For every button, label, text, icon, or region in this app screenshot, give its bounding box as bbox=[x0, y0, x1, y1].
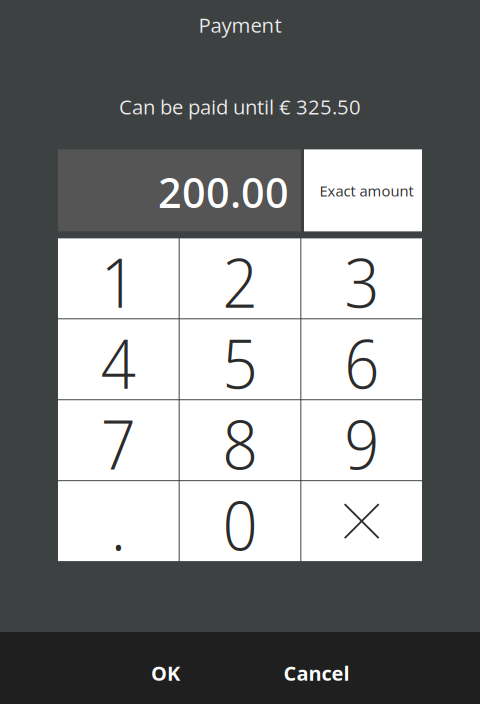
staticText: 0 bbox=[222, 478, 257, 570]
button[interactable]: 0 bbox=[180, 481, 300, 561]
staticText: Payment bbox=[198, 11, 281, 39]
button[interactable]: 9 bbox=[301, 400, 422, 480]
button[interactable]: 7 bbox=[58, 400, 179, 480]
staticText: OK bbox=[151, 659, 180, 687]
button[interactable]: 3 bbox=[301, 238, 422, 318]
staticText: Exact amount bbox=[319, 181, 413, 201]
staticText: 5 bbox=[222, 316, 257, 409]
button[interactable]: 4 bbox=[58, 319, 179, 399]
staticText: 3 bbox=[344, 235, 379, 328]
staticText: 9 bbox=[344, 397, 379, 489]
staticText: 6 bbox=[344, 316, 379, 409]
staticText: Cancel bbox=[283, 659, 349, 687]
button[interactable]: 6 bbox=[301, 319, 422, 399]
button[interactable]: OK bbox=[100, 632, 231, 704]
button[interactable]: 1 bbox=[58, 238, 179, 318]
button[interactable]: Exact amount bbox=[304, 149, 422, 231]
staticText: 2 bbox=[222, 235, 257, 328]
staticText: 1 bbox=[101, 235, 136, 328]
button[interactable]: 5 bbox=[180, 319, 300, 399]
staticText: . bbox=[111, 478, 126, 570]
staticText: Can be paid until € 325.50 bbox=[119, 93, 361, 120]
button[interactable]: Cancel bbox=[231, 632, 402, 704]
button[interactable]: . bbox=[58, 481, 179, 561]
staticText: 200.00 bbox=[158, 164, 289, 220]
staticText: 4 bbox=[101, 316, 136, 409]
button[interactable]: 2 bbox=[180, 238, 300, 318]
staticText: 8 bbox=[222, 397, 257, 489]
button[interactable]: 8 bbox=[180, 400, 300, 480]
staticText: 7 bbox=[101, 397, 136, 489]
button[interactable]: Clear bbox=[301, 481, 422, 561]
